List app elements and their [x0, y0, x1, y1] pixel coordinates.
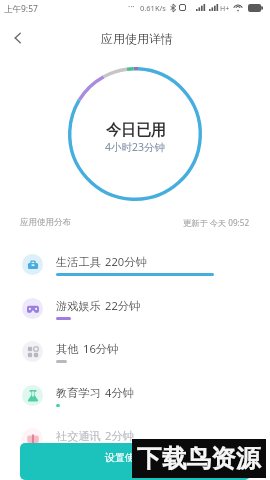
button[interactable]: 游戏娱乐: [14, 287, 256, 329]
staticText: 0.61K/s: [140, 3, 166, 13]
staticText: 社交通讯: [56, 429, 101, 443]
staticText: 应用使用详情: [101, 31, 173, 46]
staticText: 其他: [56, 342, 79, 356]
button[interactable]: 教育学习: [14, 374, 256, 416]
staticText: 设置使用时长: [105, 451, 165, 464]
staticText: 4小时23分钟: [105, 140, 166, 154]
button[interactable]: 社交通讯: [14, 417, 256, 459]
staticText: 220分钟: [105, 254, 147, 269]
staticText: 22分钟: [105, 298, 141, 313]
button[interactable]: 其他: [14, 330, 256, 372]
staticText: 教育学习: [56, 386, 101, 400]
button[interactable]: 设置使用时长: [20, 443, 250, 480]
staticText: H+: [220, 4, 230, 14]
staticText: 游戏娱乐: [56, 299, 101, 313]
staticText: ···: [128, 1, 135, 12]
staticText: 4分钟: [105, 385, 134, 400]
staticText: 应用使用分布: [20, 217, 71, 228]
staticText: 生活工具: [56, 255, 101, 269]
button[interactable]: Back: [6, 26, 30, 50]
staticText: 下载鸟资源: [137, 443, 261, 474]
staticText: 上午9:57: [4, 3, 38, 15]
staticText: 今日已用: [106, 121, 166, 140]
staticText: 更新于 今天 09:52: [183, 217, 250, 228]
staticText: 2分钟: [105, 428, 134, 443]
staticText: 16分钟: [83, 341, 119, 356]
button[interactable]: 生活工具: [14, 243, 256, 285]
